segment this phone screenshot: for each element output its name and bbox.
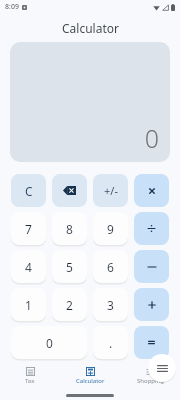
button[interactable]: C — [11, 174, 46, 207]
button[interactable]: 1 — [11, 288, 46, 321]
button[interactable]: 9 — [93, 212, 128, 245]
staticText: 4 — [25, 259, 32, 275]
button[interactable]: 0 — [11, 326, 87, 359]
button[interactable]: Menu — [148, 354, 176, 382]
button[interactable]: Backspace — [52, 174, 87, 207]
staticText: 9 — [107, 221, 114, 237]
button[interactable]: 8 — [52, 212, 87, 245]
staticText: 2 — [66, 297, 73, 313]
staticText: Shopping — [137, 377, 164, 385]
staticText: 6 — [107, 259, 114, 275]
staticText: 0 — [144, 121, 159, 155]
staticText: Calculator — [76, 377, 105, 385]
button[interactable]: 3 — [93, 288, 128, 321]
staticText: Calculator — [62, 20, 119, 36]
staticText: 1 — [25, 297, 32, 313]
button[interactable]: +/- — [93, 174, 128, 207]
button[interactable]: Shopping — [120, 362, 180, 390]
staticText: 7 — [25, 221, 32, 237]
button[interactable]: 0 — [10, 42, 170, 162]
staticText: 0 — [46, 335, 53, 351]
staticText: 8 — [66, 221, 73, 237]
button[interactable]: Calculator — [60, 362, 120, 390]
button[interactable]: 6 — [93, 250, 128, 283]
button[interactable]: Equals — [134, 326, 169, 359]
button[interactable]: Divide — [134, 212, 169, 245]
button[interactable]: 7 — [11, 212, 46, 245]
button[interactable]: Multiply — [134, 174, 169, 207]
button[interactable]: 2 — [52, 288, 87, 321]
staticText: 5 — [66, 259, 73, 275]
button[interactable]: 5 — [52, 250, 87, 283]
staticText: 8:09 — [5, 2, 19, 12]
staticText: 3 — [107, 297, 114, 313]
button[interactable]: Minus — [134, 250, 169, 283]
staticText: . — [109, 335, 113, 351]
staticText: +/- — [104, 183, 118, 198]
button[interactable]: Plus — [134, 288, 169, 321]
button[interactable]: 4 — [11, 250, 46, 283]
button[interactable]: . — [93, 326, 128, 359]
staticText: C — [25, 183, 33, 199]
staticText: Tax — [25, 377, 35, 385]
button[interactable]: Tax — [0, 362, 60, 390]
